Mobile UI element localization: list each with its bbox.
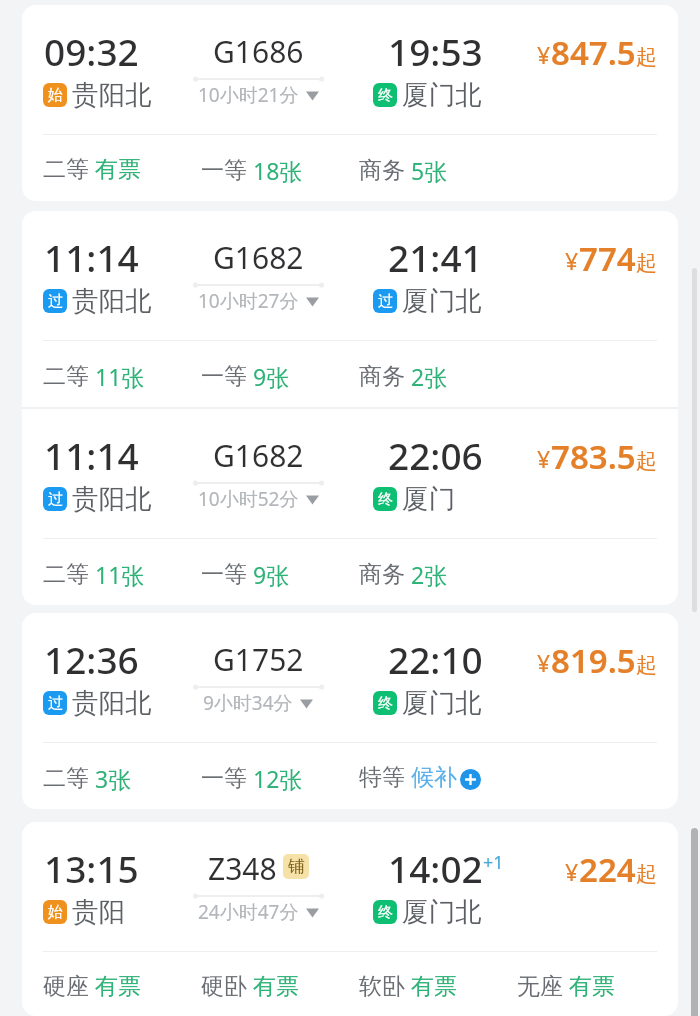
- staticText: 9张: [253, 361, 290, 392]
- staticText: 10小时21分: [198, 82, 299, 108]
- button[interactable]: 10小时27分: [198, 288, 319, 314]
- staticText: 22:06: [388, 430, 483, 480]
- staticText: +1: [483, 850, 504, 875]
- staticText: 过: [48, 292, 63, 311]
- staticText: 11张: [95, 559, 145, 590]
- staticText: 一等: [201, 764, 247, 793]
- button[interactable]: 10小时52分: [198, 486, 319, 512]
- staticText: 商务: [359, 560, 405, 589]
- staticText: 起: [636, 44, 657, 70]
- staticText: 12:36: [44, 634, 139, 684]
- staticText: ¥: [537, 647, 551, 678]
- staticText: 候补: [411, 763, 457, 792]
- staticText: ¥: [565, 856, 579, 887]
- staticText: 12张: [253, 763, 303, 794]
- staticText: 有票: [569, 972, 615, 1001]
- staticText: 贵阳北: [72, 284, 152, 317]
- staticText: 二等: [43, 560, 89, 589]
- staticText: ¥: [565, 245, 579, 276]
- staticText: 11张: [95, 361, 145, 392]
- staticText: 783.5: [551, 434, 636, 479]
- staticText: 21:41: [388, 232, 483, 282]
- staticText: 10小时52分: [198, 486, 299, 512]
- staticText: 2张: [411, 559, 448, 590]
- staticText: 过: [48, 490, 63, 509]
- staticText: 过: [48, 694, 63, 713]
- staticText: 一等: [201, 362, 247, 391]
- button[interactable]: 12:36: [22, 613, 678, 809]
- staticText: 起: [636, 448, 657, 474]
- staticText: 5张: [411, 155, 448, 186]
- button[interactable]: 24小时47分: [198, 899, 319, 925]
- staticText: 起: [636, 652, 657, 678]
- staticText: G1682: [213, 435, 304, 476]
- staticText: 终: [378, 490, 393, 509]
- staticText: 贵阳北: [72, 78, 152, 111]
- staticText: 贵阳北: [72, 686, 152, 719]
- button[interactable]: 13:15: [22, 822, 678, 1016]
- staticText: Z348: [208, 848, 277, 889]
- button[interactable]: 11:14: [22, 211, 678, 407]
- button[interactable]: 加入候补: [460, 769, 481, 790]
- staticText: 有票: [95, 155, 141, 184]
- staticText: 10小时27分: [198, 288, 299, 314]
- staticText: 一等: [201, 560, 247, 589]
- button[interactable]: 9小时34分: [203, 690, 313, 716]
- staticText: 始: [48, 86, 63, 105]
- staticText: 13:15: [44, 843, 139, 893]
- staticText: 终: [378, 86, 393, 105]
- staticText: 2张: [411, 361, 448, 392]
- staticText: 贵阳: [72, 895, 125, 928]
- staticText: 二等: [43, 155, 89, 184]
- staticText: 厦门: [402, 482, 455, 515]
- staticText: 一等: [201, 156, 247, 185]
- staticText: 厦门北: [402, 284, 482, 317]
- staticText: 11:14: [44, 232, 139, 282]
- staticText: 9小时34分: [203, 690, 293, 716]
- staticText: 贵阳北: [72, 482, 152, 515]
- staticText: 有票: [411, 972, 457, 1001]
- staticText: 9张: [253, 559, 290, 590]
- staticText: 商务: [359, 156, 405, 185]
- staticText: 铺: [288, 856, 305, 877]
- staticText: 774: [579, 236, 636, 281]
- staticText: 22:10: [388, 634, 483, 684]
- staticText: 二等: [43, 362, 89, 391]
- staticText: 硬卧: [201, 972, 247, 1001]
- staticText: 09:32: [44, 26, 139, 76]
- button[interactable]: 09:32: [22, 5, 678, 201]
- staticText: 起: [636, 250, 657, 276]
- staticText: ¥: [537, 443, 551, 474]
- staticText: 厦门北: [402, 895, 482, 928]
- staticText: 终: [378, 903, 393, 922]
- staticText: 二等: [43, 764, 89, 793]
- staticText: 819.5: [551, 638, 636, 683]
- staticText: 11:14: [44, 430, 139, 480]
- staticText: ¥: [537, 39, 551, 70]
- staticText: 无座: [517, 972, 563, 1001]
- staticText: G1752: [213, 639, 304, 680]
- staticText: 224: [579, 847, 636, 892]
- button[interactable]: 11:14: [22, 409, 678, 605]
- button[interactable]: 10小时21分: [198, 82, 319, 108]
- staticText: G1686: [213, 31, 304, 72]
- staticText: 18张: [253, 155, 303, 186]
- staticText: 软卧: [359, 972, 405, 1001]
- staticText: 硬座: [43, 972, 89, 1001]
- staticText: 19:53: [388, 26, 483, 76]
- staticText: 24小时47分: [198, 899, 299, 925]
- staticText: 终: [378, 694, 393, 713]
- staticText: 特等: [359, 763, 405, 792]
- staticText: 有票: [253, 972, 299, 1001]
- staticText: 商务: [359, 362, 405, 391]
- staticText: 3张: [95, 763, 132, 794]
- staticText: 847.5: [551, 30, 636, 75]
- staticText: 14:02: [388, 843, 483, 893]
- staticText: 始: [48, 903, 63, 922]
- staticText: 起: [636, 861, 657, 887]
- staticText: 有票: [95, 972, 141, 1001]
- staticText: 过: [378, 292, 393, 311]
- staticText: 厦门北: [402, 686, 482, 719]
- staticText: 厦门北: [402, 78, 482, 111]
- staticText: G1682: [213, 237, 304, 278]
